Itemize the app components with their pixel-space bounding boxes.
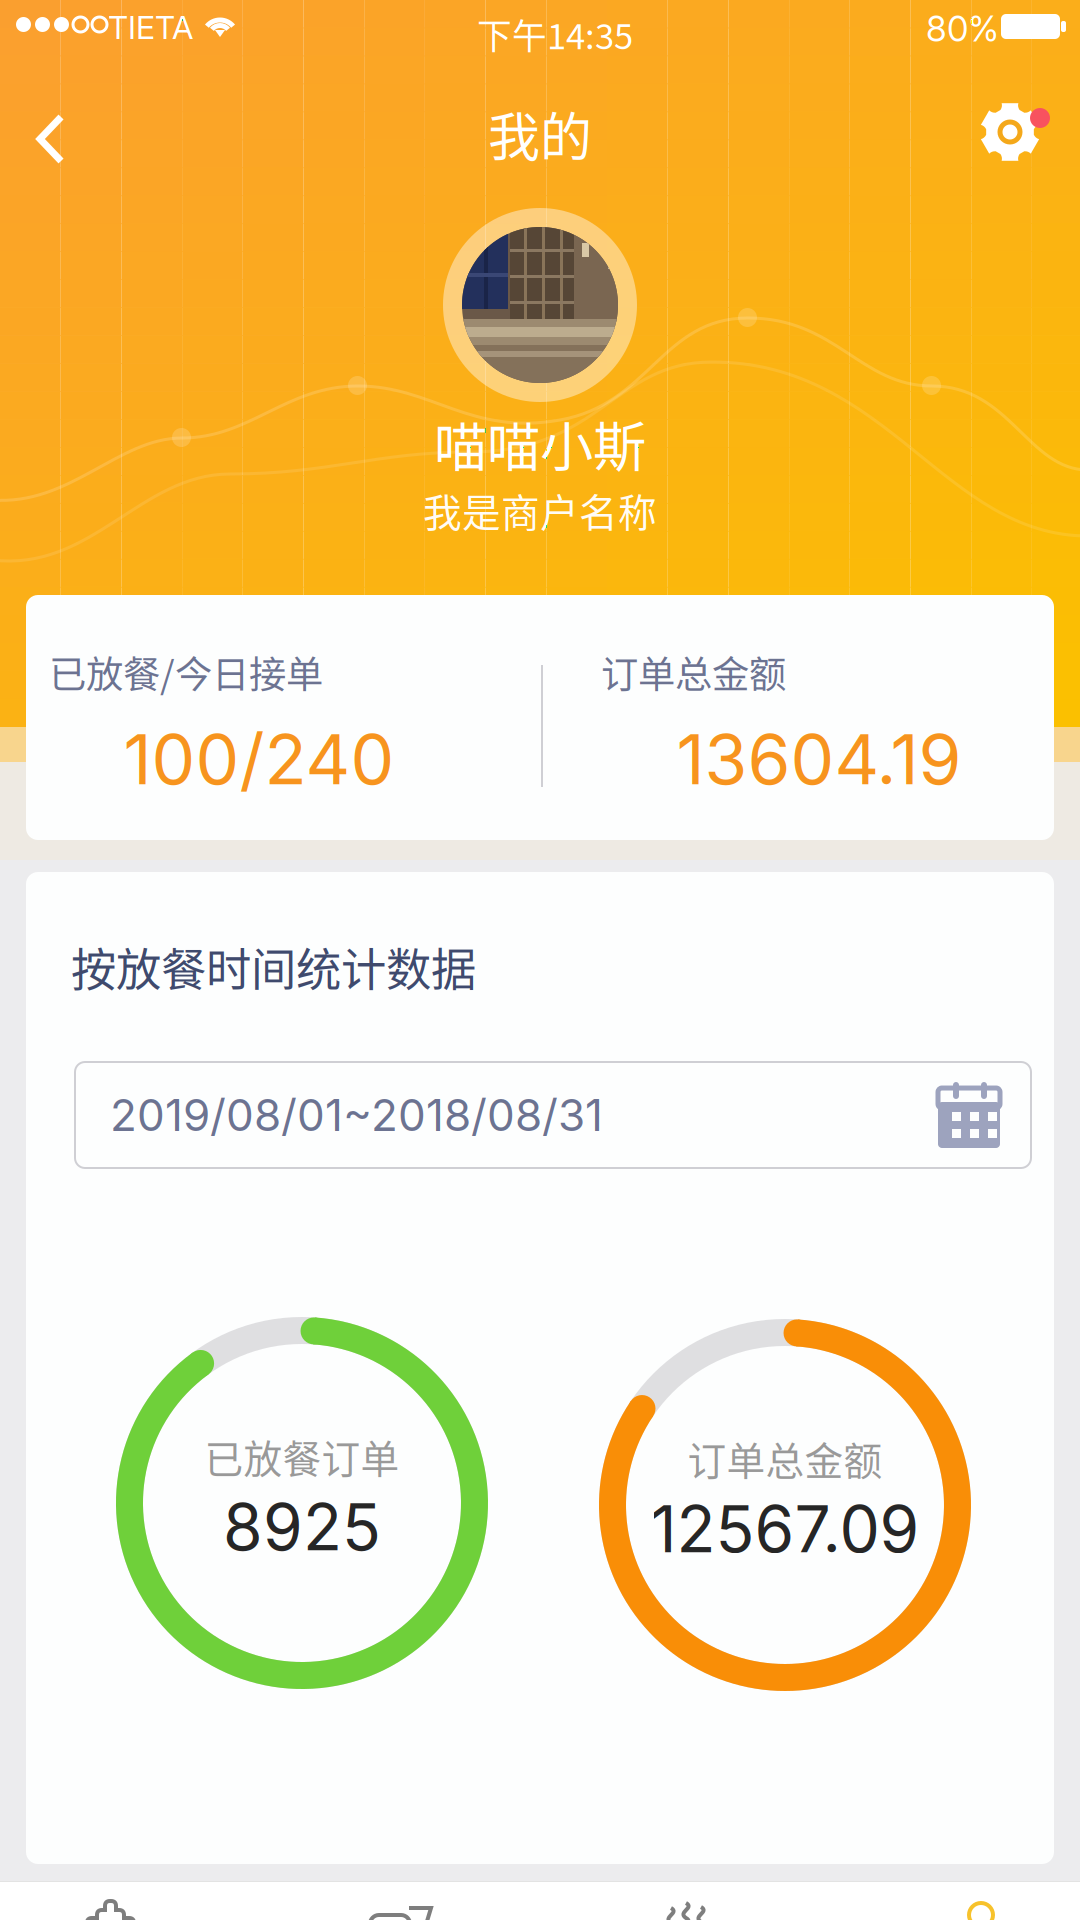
- button[interactable]: 设置: [0, 62, 160, 172]
- staticText: 喵喵小斯: [434, 405, 646, 482]
- staticText: 12567.09: [650, 1490, 919, 1568]
- staticText: 已放餐/今日接单: [49, 645, 323, 699]
- button[interactable]: 菜品: [0, 1881, 270, 1920]
- button[interactable]: 2019/08/01~2018/08/31: [75, 1062, 1031, 1168]
- staticText: 订单总金额: [601, 645, 786, 699]
- staticText: 我是商户名称: [423, 482, 657, 538]
- button[interactable]: 我的: [0, 1881, 270, 1920]
- staticText: 2019/08/01~2018/08/31: [110, 1088, 603, 1142]
- staticText: 下午14:35: [477, 9, 633, 59]
- staticText: 已放餐订单: [204, 1428, 399, 1484]
- staticText: TIETA: [108, 8, 193, 47]
- staticText: 13604.19: [676, 717, 961, 801]
- button[interactable]: 返回: [0, 62, 160, 172]
- staticText: 80%: [926, 8, 999, 50]
- button[interactable]: 订单: [0, 1881, 270, 1920]
- button[interactable]: 放餐: [0, 1881, 270, 1920]
- staticText: 8925: [223, 1488, 381, 1566]
- staticText: 订单总金额: [687, 1430, 882, 1486]
- staticText: 按放餐时间统计数据: [71, 934, 476, 1000]
- staticText: 100/240: [123, 717, 394, 801]
- staticText: 我的: [488, 96, 592, 171]
